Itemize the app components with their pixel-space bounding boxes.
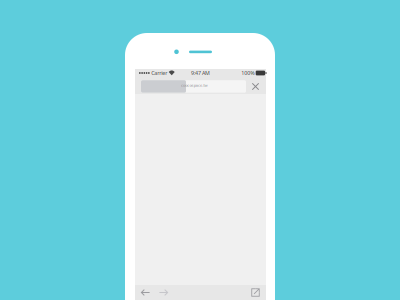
- button[interactable]: Forward: [157, 286, 170, 299]
- staticText: coocospace.tw: [181, 82, 207, 88]
- staticText: 100%: [241, 69, 254, 77]
- button[interactable]: Share: [249, 286, 262, 299]
- staticText: Carrier: [151, 69, 167, 77]
- button[interactable]: Stop loading: [248, 80, 262, 93]
- staticText: 9:47 AM: [191, 69, 210, 77]
- button[interactable]: Back: [139, 286, 152, 299]
